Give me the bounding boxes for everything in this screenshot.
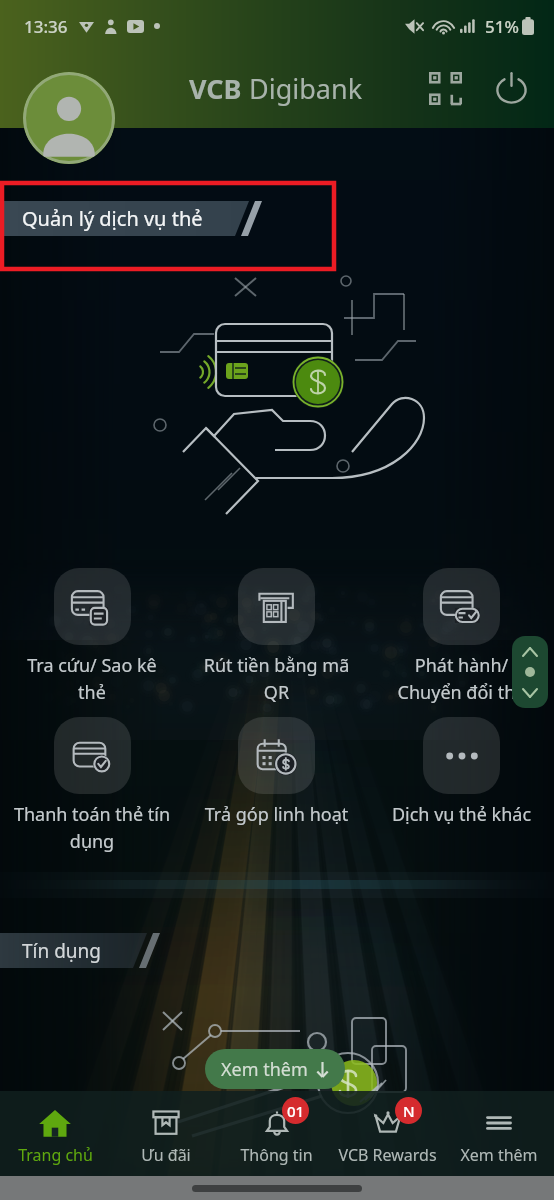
button[interactable]: Thanh toán thẻ tín dụng bbox=[0, 717, 184, 853]
button[interactable]: Trang chủ bbox=[0, 1091, 110, 1176]
staticText: Tín dụng bbox=[22, 938, 102, 964]
button[interactable]: Xem thêm bbox=[205, 1049, 345, 1089]
staticText: 51% bbox=[485, 15, 519, 38]
button[interactable]: Power bbox=[487, 64, 535, 112]
staticText: N bbox=[403, 1101, 415, 1121]
staticText: Thông tin bbox=[240, 1144, 313, 1166]
staticText: Xem thêm bbox=[221, 1057, 308, 1082]
button[interactable]: Profile bbox=[23, 72, 115, 164]
staticText: Thanh toán thẻ tín dụng bbox=[0, 802, 184, 853]
button[interactable]: Tra cứu/ Sao kê thẻ bbox=[0, 568, 184, 704]
button[interactable]: Rút tiền bằng mã QR bbox=[184, 568, 369, 704]
button[interactable]: Tín dụng bbox=[0, 933, 554, 968]
staticText: Xem thêm bbox=[460, 1144, 538, 1166]
staticText: Tra cứu/ Sao kê thẻ bbox=[0, 653, 184, 704]
button[interactable]: Xem thêm bbox=[443, 1091, 554, 1176]
button[interactable]: Quản lý dịch vụ thẻ bbox=[0, 201, 554, 236]
button[interactable]: Phát hành/ Chuyển đổi thẻ bbox=[369, 568, 554, 704]
staticText: Rút tiền bằng mã QR bbox=[184, 653, 369, 704]
staticText: Trả góp linh hoạt bbox=[184, 802, 369, 827]
button[interactable]: Scroll up and down bbox=[512, 636, 548, 708]
button[interactable]: N bbox=[332, 1091, 443, 1176]
button[interactable]: QR code bbox=[421, 64, 469, 112]
button[interactable]: Trả góp linh hoạt bbox=[184, 717, 369, 827]
staticText: Phát hành/ Chuyển đổi thẻ bbox=[369, 653, 554, 704]
staticText: 13:36 bbox=[24, 15, 68, 38]
staticText: Trang chủ bbox=[18, 1144, 93, 1166]
staticText: Quản lý dịch vụ thẻ bbox=[22, 205, 203, 232]
button[interactable]: Ưu đãi bbox=[110, 1091, 221, 1176]
staticText: Digibank bbox=[242, 70, 363, 107]
staticText: Dịch vụ thẻ khác bbox=[369, 802, 554, 827]
button[interactable]: 01 bbox=[221, 1091, 332, 1176]
staticText: VCB bbox=[189, 70, 242, 107]
staticText: 01 bbox=[287, 1101, 305, 1121]
staticText: VCB Rewards bbox=[338, 1144, 437, 1166]
button[interactable]: Dịch vụ thẻ khác bbox=[369, 717, 554, 827]
staticText: Ưu đãi bbox=[141, 1144, 191, 1166]
